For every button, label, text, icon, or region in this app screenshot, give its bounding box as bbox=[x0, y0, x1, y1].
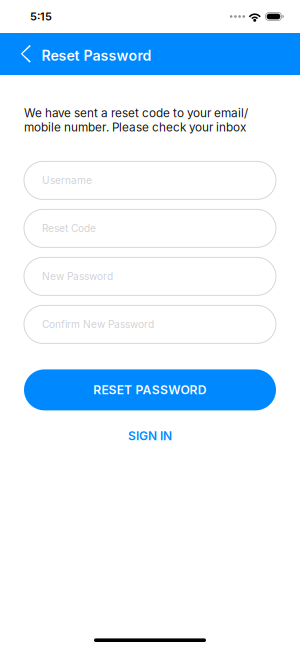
staticText: New Password bbox=[42, 270, 113, 283]
staticText: SIGN IN bbox=[128, 429, 172, 443]
button[interactable]: Confirm New Password bbox=[24, 305, 276, 343]
staticText: Reset Code bbox=[42, 222, 96, 235]
staticText: Confirm New Password bbox=[42, 318, 154, 331]
staticText: Username bbox=[42, 174, 92, 187]
button[interactable]: RESET PASSWORD bbox=[24, 369, 276, 410]
button[interactable]: Reset Code bbox=[24, 209, 276, 247]
button[interactable]: New Password bbox=[24, 257, 276, 295]
button[interactable]: Back bbox=[0, 33, 41, 75]
button[interactable]: Username bbox=[24, 161, 276, 199]
button[interactable]: SIGN IN bbox=[24, 423, 276, 448]
button[interactable]: Reset Password bbox=[41, 33, 151, 75]
staticText: We have sent a reset code to your email/… bbox=[24, 106, 248, 134]
staticText: RESET PASSWORD bbox=[93, 383, 207, 397]
staticText: Reset Password bbox=[41, 47, 151, 64]
staticText: 5:15 bbox=[30, 10, 52, 23]
